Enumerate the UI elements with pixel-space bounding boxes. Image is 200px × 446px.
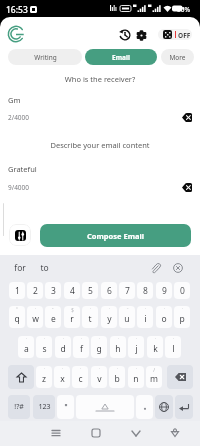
- button[interactable]: ˙: [91, 366, 107, 388]
- button[interactable]: ˙: [36, 336, 52, 358]
- button[interactable]: 123: [33, 395, 55, 419]
- button[interactable]: Clear receiver: [179, 110, 194, 125]
- button[interactable]: ˙: [165, 336, 181, 358]
- button[interactable]: Enter: [175, 395, 193, 419]
- staticText: for: [14, 262, 26, 274]
- staticText: 3: [51, 285, 56, 297]
- button[interactable]: Attach: [148, 260, 163, 275]
- button[interactable]: $: [64, 306, 80, 328]
- staticText: i: [144, 313, 147, 325]
- button[interactable]: Change language: [155, 395, 173, 419]
- button[interactable]: ˙: [174, 306, 190, 328]
- button[interactable]: ˙: [36, 366, 52, 388]
- staticText: a: [24, 343, 29, 355]
- button[interactable]: !?#: [8, 395, 30, 419]
- staticText: g: [96, 343, 102, 355]
- staticText: ˙: [164, 307, 165, 313]
- button[interactable]: History: [118, 28, 132, 42]
- button[interactable]: ˙: [91, 336, 107, 358]
- staticText: v: [97, 373, 102, 385]
- staticText: ˙: [63, 337, 64, 343]
- staticText: Writing: [34, 53, 57, 62]
- button[interactable]: 6: [101, 282, 117, 299]
- staticText: Gm: [8, 95, 21, 105]
- button[interactable]: 9: [156, 282, 172, 299]
- staticText: y: [107, 313, 112, 325]
- staticText: ˙: [35, 307, 36, 313]
- staticText: w: [32, 313, 39, 325]
- button[interactable]: Email: [85, 49, 157, 65]
- button[interactable]: Compose Email: [40, 224, 191, 247]
- button[interactable]: for: [8, 258, 32, 277]
- button[interactable]: ˙: [27, 306, 43, 328]
- button[interactable]: ˙: [147, 336, 163, 358]
- button[interactable]: ˚: [9, 306, 25, 328]
- button[interactable]: ˙: [82, 306, 98, 328]
- button[interactable]: Backspace: [167, 365, 193, 389]
- button[interactable]: Comma: [57, 395, 74, 419]
- staticText: 1: [15, 285, 20, 297]
- button[interactable]: Grammarly logo: [7, 25, 25, 43]
- button[interactable]: Close keyboard: [170, 260, 185, 275]
- button[interactable]: 2: [27, 282, 43, 299]
- button[interactable]: ˙: [110, 336, 126, 358]
- staticText: Grateful: [8, 164, 37, 174]
- staticText: 2/4000: [8, 113, 30, 122]
- button[interactable]: Download: [167, 425, 183, 441]
- staticText: ˙: [81, 337, 82, 343]
- button[interactable]: ˙: [101, 306, 117, 328]
- staticText: ˙: [99, 337, 100, 343]
- button[interactable]: 4: [64, 282, 80, 299]
- button[interactable]: /: [146, 366, 162, 388]
- button[interactable]: ´: [45, 306, 61, 328]
- button[interactable]: Period: [136, 395, 153, 419]
- staticText: d: [60, 343, 66, 355]
- button[interactable]: ˙: [73, 336, 89, 358]
- button[interactable]: 7: [119, 282, 135, 299]
- staticText: t: [88, 313, 92, 325]
- staticText: 96%: [177, 5, 190, 14]
- button[interactable]: ¨: [119, 306, 135, 328]
- button[interactable]: ˙: [128, 366, 144, 388]
- button[interactable]: ˙: [109, 366, 125, 388]
- button[interactable]: Shift: [8, 365, 34, 389]
- button[interactable]: Tune settings: [9, 224, 31, 246]
- button[interactable]: ˙: [18, 336, 34, 358]
- staticText: s: [42, 343, 47, 355]
- button[interactable]: Writing: [8, 49, 82, 65]
- staticText: ˙: [44, 337, 45, 343]
- button[interactable]: ˙: [72, 366, 88, 388]
- button[interactable]: More: [161, 49, 194, 65]
- staticText: /: [153, 367, 155, 373]
- button[interactable]: to: [34, 258, 55, 277]
- button[interactable]: ˙: [137, 306, 153, 328]
- button[interactable]: 8: [137, 282, 153, 299]
- staticText: o: [161, 313, 167, 325]
- button[interactable]: ˙: [128, 336, 144, 358]
- staticText: z: [42, 373, 46, 385]
- staticText: 9: [162, 285, 167, 297]
- button[interactable]: OFF: [158, 29, 192, 40]
- button[interactable]: ˙: [54, 366, 70, 388]
- button[interactable]: 1: [9, 282, 25, 299]
- button[interactable]: 3: [45, 282, 61, 299]
- button[interactable]: ˙: [156, 306, 172, 328]
- staticText: 6: [107, 285, 112, 297]
- staticText: ˙: [182, 307, 183, 313]
- button[interactable]: ˙: [55, 336, 71, 358]
- button[interactable]: 5: [82, 282, 98, 299]
- staticText: 9/4000: [8, 183, 30, 192]
- button[interactable]: 0: [174, 282, 190, 299]
- button[interactable]: Space: [76, 395, 134, 419]
- button[interactable]: Home: [88, 425, 104, 441]
- staticText: f: [80, 343, 83, 355]
- button[interactable]: Back: [128, 425, 144, 441]
- staticText: l: [172, 343, 175, 355]
- staticText: u: [124, 313, 130, 325]
- button[interactable]: Recents: [48, 425, 64, 441]
- staticText: ˙: [62, 367, 63, 373]
- button[interactable]: Clear content: [179, 180, 194, 195]
- staticText: ˙: [145, 307, 146, 313]
- staticText: p: [179, 313, 185, 325]
- button[interactable]: Settings: [134, 28, 148, 42]
